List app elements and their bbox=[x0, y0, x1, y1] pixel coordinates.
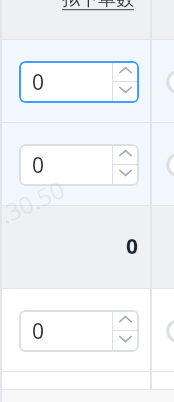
button[interactable]: Increase bbox=[113, 61, 139, 81]
button[interactable]: Decrease bbox=[113, 165, 139, 186]
button[interactable]: Increase bbox=[113, 144, 139, 164]
staticText: 0 bbox=[32, 68, 45, 97]
button[interactable]: Increase bbox=[113, 310, 139, 330]
staticText: 0 bbox=[32, 317, 45, 346]
button[interactable]: 0 bbox=[19, 144, 139, 186]
button[interactable]: 拟下单数 bbox=[0, 0, 150, 40]
button[interactable]: 0 bbox=[0, 206, 150, 289]
staticText: .30.50 bbox=[0, 172, 70, 231]
button[interactable]: Decrease bbox=[113, 331, 139, 352]
staticText: 0 bbox=[126, 232, 139, 261]
staticText: 0 bbox=[32, 151, 45, 180]
staticText: 拟下单数 bbox=[62, 0, 134, 11]
button[interactable]: 0 bbox=[19, 61, 139, 103]
button[interactable]: 0 bbox=[19, 310, 139, 352]
button[interactable]: Decrease bbox=[113, 82, 139, 103]
